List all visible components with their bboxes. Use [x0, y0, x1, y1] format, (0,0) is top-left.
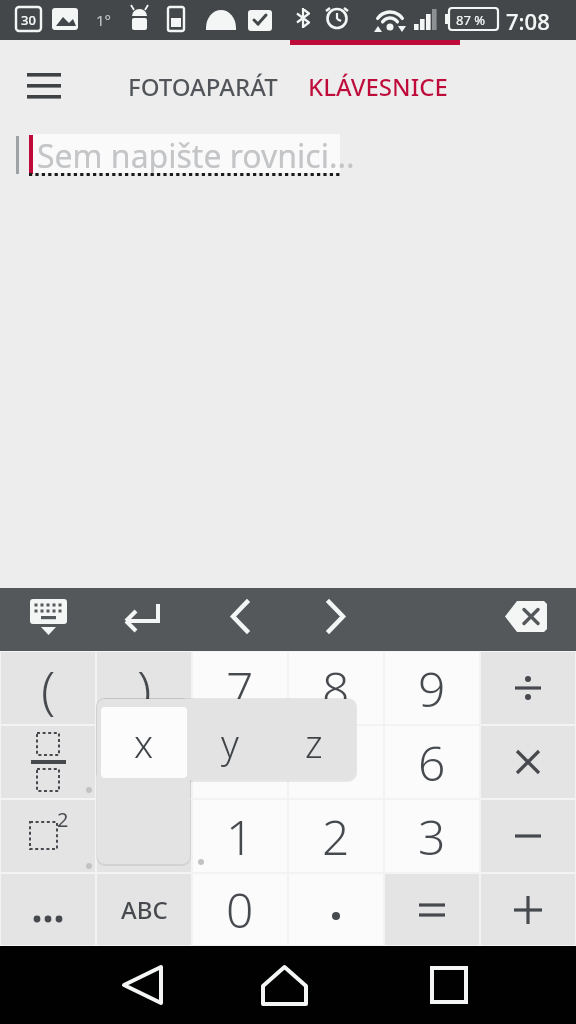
button[interactable]: ABC [97, 874, 191, 945]
button[interactable] [481, 726, 575, 798]
button[interactable]: 2 [1, 800, 95, 872]
button[interactable] [306, 588, 366, 651]
button[interactable]: 9 [385, 652, 479, 724]
staticText: 87 % [456, 11, 486, 29]
staticText: KLÁVESNICE [308, 70, 448, 103]
staticText: ) [137, 653, 152, 724]
button[interactable]: ( [1, 652, 95, 724]
staticText: ABC [121, 893, 168, 926]
button[interactable] [412, 946, 484, 1024]
button[interactable] [289, 874, 383, 945]
button[interactable] [97, 800, 191, 872]
staticText: ( [41, 653, 56, 724]
button[interactable] [17, 63, 71, 111]
button[interactable] [498, 588, 558, 651]
staticText: x [134, 717, 154, 769]
button[interactable] [31, 134, 340, 173]
staticText: z [305, 717, 323, 769]
button[interactable] [106, 946, 178, 1024]
button[interactable] [289, 726, 383, 798]
staticText: 3 [418, 804, 446, 869]
button[interactable] [210, 588, 270, 651]
staticText: Sem napište rovnici... [37, 134, 355, 178]
button[interactable] [248, 946, 320, 1024]
button[interactable] [113, 588, 173, 651]
staticText: 1 [226, 804, 254, 869]
staticText: 1° [96, 10, 112, 30]
staticText: FOTOAPARÁT [128, 70, 278, 103]
button[interactable]: KLÁVESNICE [300, 55, 455, 117]
button[interactable] [97, 726, 191, 798]
button[interactable] [1, 726, 95, 798]
button[interactable] [18, 588, 78, 651]
button[interactable]: x [101, 707, 187, 778]
staticText: 2 [322, 804, 350, 869]
button[interactable]: z [272, 707, 356, 778]
button[interactable]: 3 [385, 800, 479, 872]
staticText: 8 [322, 656, 350, 721]
button[interactable] [481, 800, 575, 872]
button[interactable] [481, 874, 575, 945]
staticText: y [221, 717, 239, 769]
staticText: 6 [418, 730, 446, 795]
button[interactable] [1, 874, 95, 945]
button[interactable]: 6 [385, 726, 479, 798]
button[interactable]: ) [97, 652, 191, 724]
button[interactable]: 7 [193, 652, 287, 724]
button[interactable]: y [187, 707, 272, 778]
button[interactable] [481, 652, 575, 724]
button[interactable] [385, 874, 479, 945]
staticText: 7 [226, 656, 254, 721]
staticText: 2 [57, 806, 69, 833]
staticText: 7:08 [506, 6, 550, 36]
staticText: 9 [418, 656, 446, 721]
button[interactable]: 0 [193, 874, 287, 945]
staticText: 30 [21, 11, 36, 29]
staticText: 0 [226, 877, 254, 942]
button[interactable]: 1 [193, 800, 287, 872]
button[interactable]: 2 [289, 800, 383, 872]
button[interactable]: FOTOAPARÁT [120, 55, 285, 117]
button[interactable]: 8 [289, 652, 383, 724]
button[interactable] [193, 726, 287, 798]
